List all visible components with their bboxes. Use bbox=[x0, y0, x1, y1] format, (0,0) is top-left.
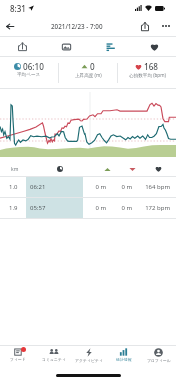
staticText: 0 m bbox=[86, 204, 106, 212]
button[interactable]: Photos bbox=[44, 37, 88, 56]
button[interactable]: More options bbox=[156, 16, 176, 36]
staticText: 平均ペース bbox=[17, 72, 41, 78]
staticText: プロフィール bbox=[147, 358, 171, 363]
staticText: コミュニティ bbox=[42, 357, 66, 362]
staticText: 06:10 bbox=[23, 61, 44, 72]
staticText: 0 bbox=[90, 61, 95, 72]
button[interactable]: Analysis bbox=[88, 37, 132, 56]
staticText: 0 m bbox=[86, 183, 106, 191]
staticText: 0 m bbox=[112, 183, 132, 191]
staticText: 1.0 bbox=[9, 183, 18, 191]
button[interactable]: Favorite bbox=[132, 37, 176, 56]
button[interactable]: フィード bbox=[0, 346, 36, 364]
button[interactable]: Share bbox=[134, 16, 156, 36]
button[interactable]: Export bbox=[0, 37, 44, 56]
staticText: 上昇高度 (m) bbox=[75, 72, 102, 78]
staticText: 2021/12/23 - 7:00 bbox=[51, 22, 103, 31]
staticText: 05:57 bbox=[30, 204, 46, 212]
button[interactable]: 1.0 bbox=[0, 177, 176, 197]
button[interactable]: Back bbox=[0, 16, 20, 36]
button[interactable]: 統計情報 bbox=[106, 346, 141, 364]
button[interactable]: コミュニティ bbox=[36, 346, 71, 364]
button[interactable]: プロフィール bbox=[141, 346, 176, 364]
staticText: フィード bbox=[10, 357, 26, 362]
staticText: 164 bpm bbox=[140, 183, 170, 191]
staticText: km bbox=[11, 166, 19, 173]
staticText: 168 bbox=[144, 61, 159, 72]
staticText: アクティビティ bbox=[75, 358, 103, 363]
staticText: 統計情報 bbox=[116, 357, 132, 362]
staticText: 0 m bbox=[112, 204, 132, 212]
staticText: 8:31 bbox=[10, 3, 26, 14]
staticText: 1.9 bbox=[9, 204, 18, 212]
staticText: 心拍数平均 (bpm) bbox=[129, 72, 166, 78]
staticText: 172 bpm bbox=[140, 204, 170, 212]
button[interactable]: 1.9 bbox=[0, 198, 176, 218]
staticText: 06:21 bbox=[30, 183, 46, 191]
button[interactable]: アクティビティ bbox=[71, 346, 106, 364]
